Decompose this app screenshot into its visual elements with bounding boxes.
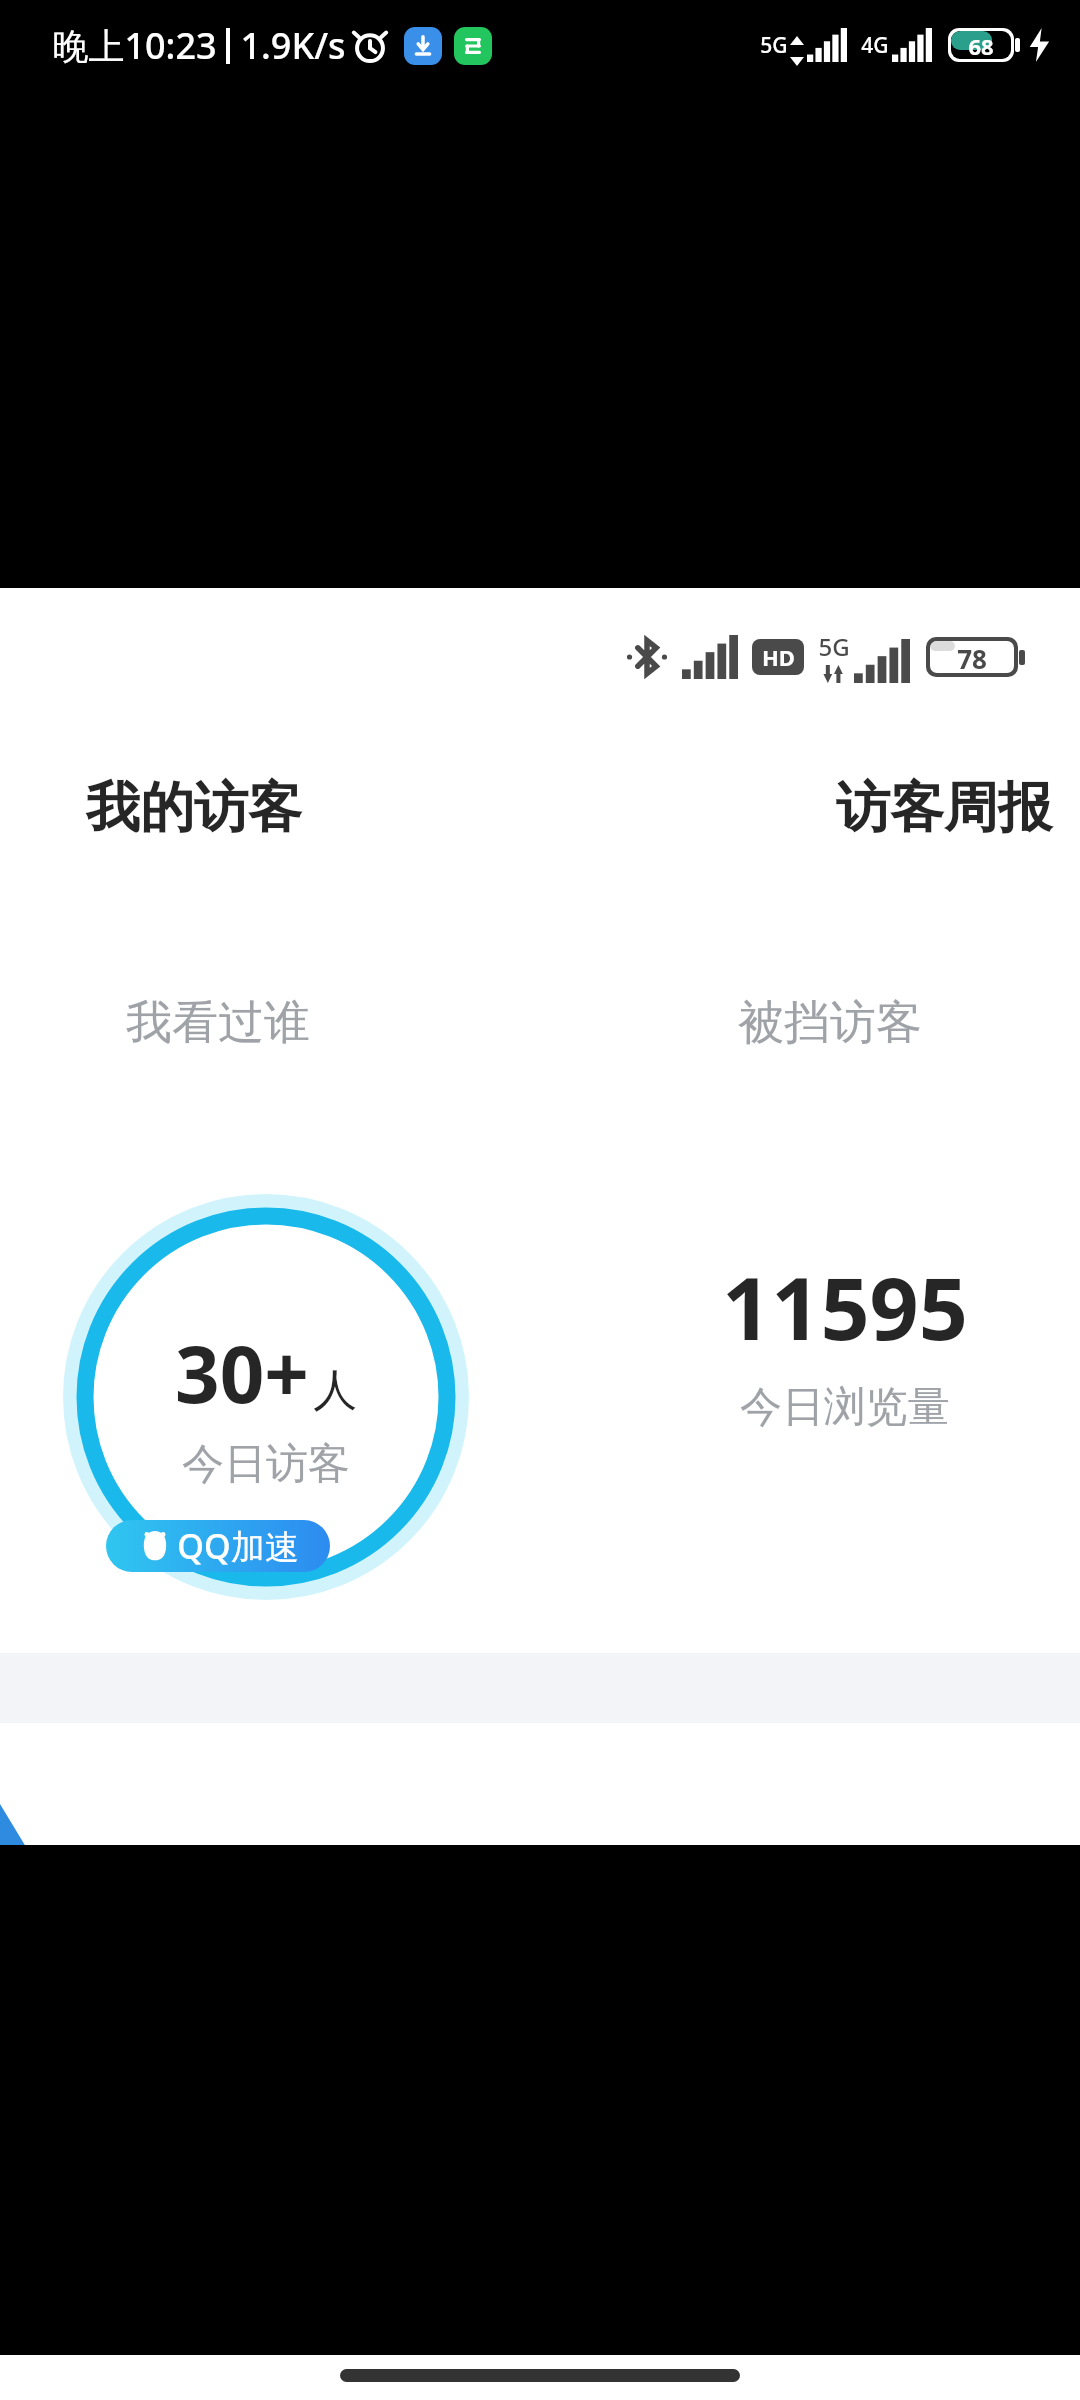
- staticText: QQ加速: [177, 1523, 299, 1569]
- staticText: 4G: [861, 31, 889, 60]
- button[interactable]: 我看过谁: [60, 973, 480, 1073]
- staticText: 78: [957, 641, 987, 673]
- button[interactable]: 访客周报: [600, 753, 1060, 863]
- staticText: 我看过谁: [126, 994, 310, 1052]
- staticText: 5G: [818, 630, 850, 663]
- button[interactable]: 被挡访客: [600, 973, 1060, 1073]
- staticText: 今日访客: [182, 1438, 350, 1491]
- staticText: 68: [968, 31, 994, 59]
- button[interactable]: 我的访客: [60, 753, 480, 863]
- staticText: 被挡访客: [738, 994, 922, 1052]
- button[interactable]: 11595: [620, 1248, 1070, 1434]
- staticText: 5G: [760, 31, 788, 60]
- staticText: 晚上10:23: [52, 21, 217, 70]
- staticText: 我的访客: [86, 774, 302, 842]
- button[interactable]: QQ加速: [106, 1520, 330, 1572]
- staticText: 11595: [722, 1248, 968, 1365]
- staticText: 人: [313, 1363, 357, 1418]
- staticText: 今日浏览量: [740, 1381, 950, 1434]
- staticText: 访客周报: [836, 774, 1052, 842]
- button[interactable]: 30+: [68, 1198, 464, 1598]
- staticText: HD: [762, 642, 795, 672]
- staticText: 1.9K/s: [240, 21, 346, 70]
- staticText: 30+: [175, 1320, 309, 1426]
